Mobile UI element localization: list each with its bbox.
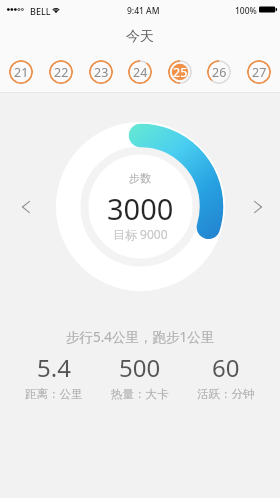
staticText: 21 [14, 64, 29, 81]
staticText: 5.4 [37, 351, 71, 384]
staticText: 500 [119, 351, 161, 384]
staticText: 热量：大卡 [111, 387, 169, 401]
staticText: 9:41 AM [127, 5, 160, 17]
staticText: 目标 9000 [113, 226, 168, 242]
staticText: 3000 [107, 189, 174, 228]
button[interactable]: 21 [9, 60, 33, 84]
staticText: 27 [252, 64, 267, 81]
staticText: 60 [212, 351, 240, 384]
button[interactable]: Next day [248, 197, 268, 217]
staticText: 今天 [126, 28, 154, 46]
staticText: 步行5.4公里，跑步1公里 [66, 328, 215, 346]
staticText: 25 [173, 64, 188, 81]
button[interactable]: 26 [207, 60, 231, 84]
button[interactable]: 5.4 [11, 351, 97, 401]
button[interactable]: 500 [97, 351, 183, 401]
staticText: BELL [30, 5, 51, 17]
button[interactable]: Previous day [16, 197, 36, 217]
staticText: 26 [212, 64, 227, 81]
button[interactable]: 23 [89, 60, 113, 84]
button[interactable]: 25 [168, 60, 192, 84]
button[interactable]: 60 [183, 351, 269, 401]
staticText: 步数 [129, 171, 151, 185]
staticText: 22 [54, 64, 69, 81]
staticText: 100% [235, 5, 257, 17]
button[interactable]: 27 [247, 60, 271, 84]
staticText: 23 [94, 64, 109, 81]
staticText: 距离：公里 [25, 387, 83, 401]
staticText: 24 [133, 64, 148, 81]
staticText: 活跃：分钟 [197, 387, 255, 401]
button[interactable]: 24 [128, 60, 152, 84]
button[interactable]: 22 [49, 60, 73, 84]
